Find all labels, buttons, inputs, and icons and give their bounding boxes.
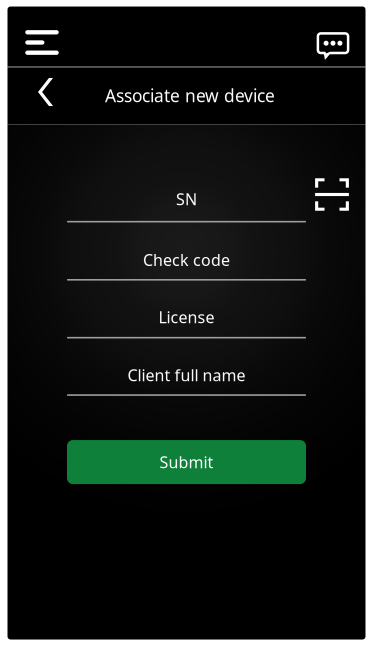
staticText: Check code — [143, 249, 230, 270]
button[interactable]: SN — [67, 188, 306, 222]
staticText: Submit — [159, 451, 213, 473]
staticText: Associate new device — [105, 84, 275, 107]
button[interactable]: Submit — [67, 440, 306, 484]
button[interactable]: Messages — [309, 18, 357, 66]
staticText: SN — [176, 188, 197, 210]
button[interactable]: Menu — [18, 18, 66, 66]
button[interactable]: Back — [23, 70, 67, 114]
staticText: License — [158, 306, 214, 328]
button[interactable]: License — [67, 306, 306, 338]
button[interactable]: Client full name — [67, 364, 306, 396]
button[interactable]: Scan barcode — [310, 172, 354, 216]
button[interactable]: Check code — [67, 249, 306, 280]
staticText: Client full name — [127, 364, 245, 386]
